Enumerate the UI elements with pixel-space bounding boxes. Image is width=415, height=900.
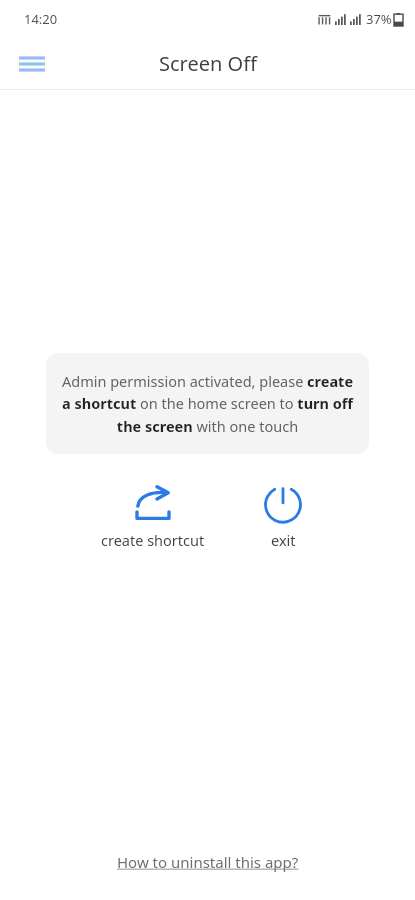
staticText: exit bbox=[271, 530, 296, 550]
button[interactable]: exit bbox=[228, 482, 338, 554]
staticText: Admin permission activated, please creat… bbox=[60, 371, 355, 436]
staticText: 14:20 bbox=[24, 10, 58, 28]
staticText: 37% bbox=[366, 10, 392, 28]
button[interactable]: create shortcut bbox=[78, 482, 228, 554]
button[interactable]: Open navigation menu bbox=[8, 40, 56, 88]
staticText: create shortcut bbox=[101, 530, 205, 550]
staticText: How to uninstall this app? bbox=[117, 852, 299, 872]
button[interactable]: How to uninstall this app? bbox=[0, 842, 415, 882]
staticText: Screen Off bbox=[159, 50, 257, 77]
